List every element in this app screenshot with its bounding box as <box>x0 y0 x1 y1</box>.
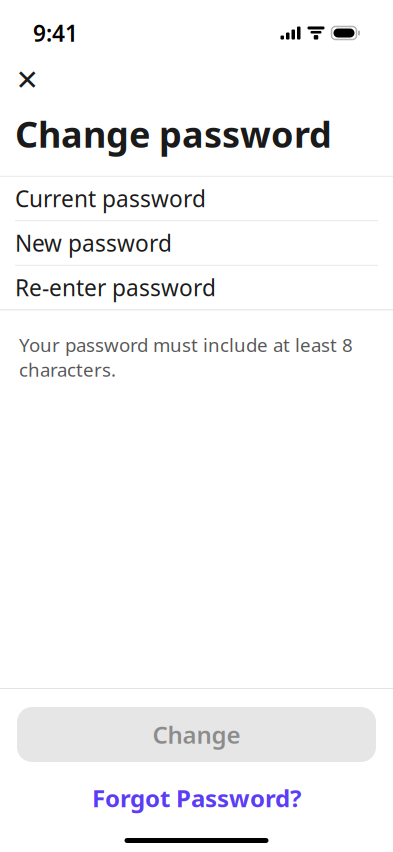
staticText: Forgot Password? <box>92 782 301 814</box>
staticText: Change <box>152 719 240 750</box>
staticText: Re-enter password <box>15 272 216 303</box>
button[interactable]: Forgot Password? <box>17 778 376 818</box>
staticText: Your password must include at least 8 ch… <box>19 332 353 382</box>
button[interactable]: Current password <box>0 177 393 220</box>
button[interactable]: Re-enter password <box>0 266 393 309</box>
staticText: ✕ <box>15 64 38 96</box>
staticText: Current password <box>15 183 206 214</box>
button[interactable]: Change <box>17 707 376 762</box>
button[interactable]: New password <box>0 221 393 265</box>
staticText: New password <box>15 228 172 258</box>
button[interactable]: Close <box>5 58 49 102</box>
staticText: Change password <box>15 110 332 158</box>
staticText: 9:41 <box>33 18 78 48</box>
